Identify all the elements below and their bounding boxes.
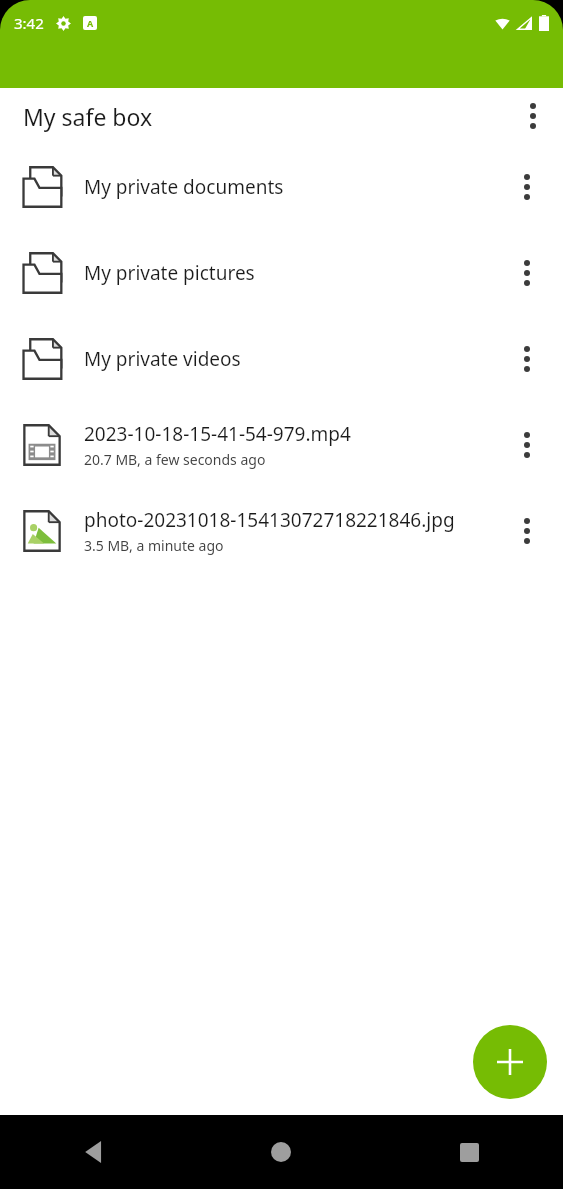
button[interactable]: My private videos (0, 316, 563, 402)
button[interactable]: photo-20231018-15413072718221846.jpg (0, 488, 563, 574)
button[interactable]: More options (501, 247, 553, 299)
staticText: 20.7 MB, a few seconds ago (84, 450, 266, 469)
staticText: My private videos (84, 346, 241, 372)
button[interactable]: My private documents (0, 144, 563, 230)
button[interactable]: My private pictures (0, 230, 563, 316)
staticText: photo-20231018-15413072718221846.jpg (84, 507, 455, 533)
button[interactable]: Add (473, 1025, 547, 1099)
staticText: My private pictures (84, 260, 255, 286)
button[interactable]: Back (0, 1115, 187, 1189)
staticText: 2023-10-18-15-41-54-979.mp4 (84, 421, 351, 447)
button[interactable]: More options (501, 419, 553, 471)
button[interactable]: More options (511, 94, 555, 138)
button[interactable]: More options (501, 161, 553, 213)
button[interactable]: More options (501, 333, 553, 385)
button[interactable]: Home (187, 1115, 375, 1189)
staticText: My private documents (84, 174, 284, 200)
staticText: 3.5 MB, a minute ago (84, 536, 224, 555)
staticText: My safe box (23, 101, 153, 132)
button[interactable]: More options (501, 505, 553, 557)
staticText: A (87, 17, 94, 29)
staticText: 3:42 (14, 13, 44, 33)
button[interactable]: Recents (375, 1115, 563, 1189)
button[interactable]: 2023-10-18-15-41-54-979.mp4 (0, 402, 563, 488)
